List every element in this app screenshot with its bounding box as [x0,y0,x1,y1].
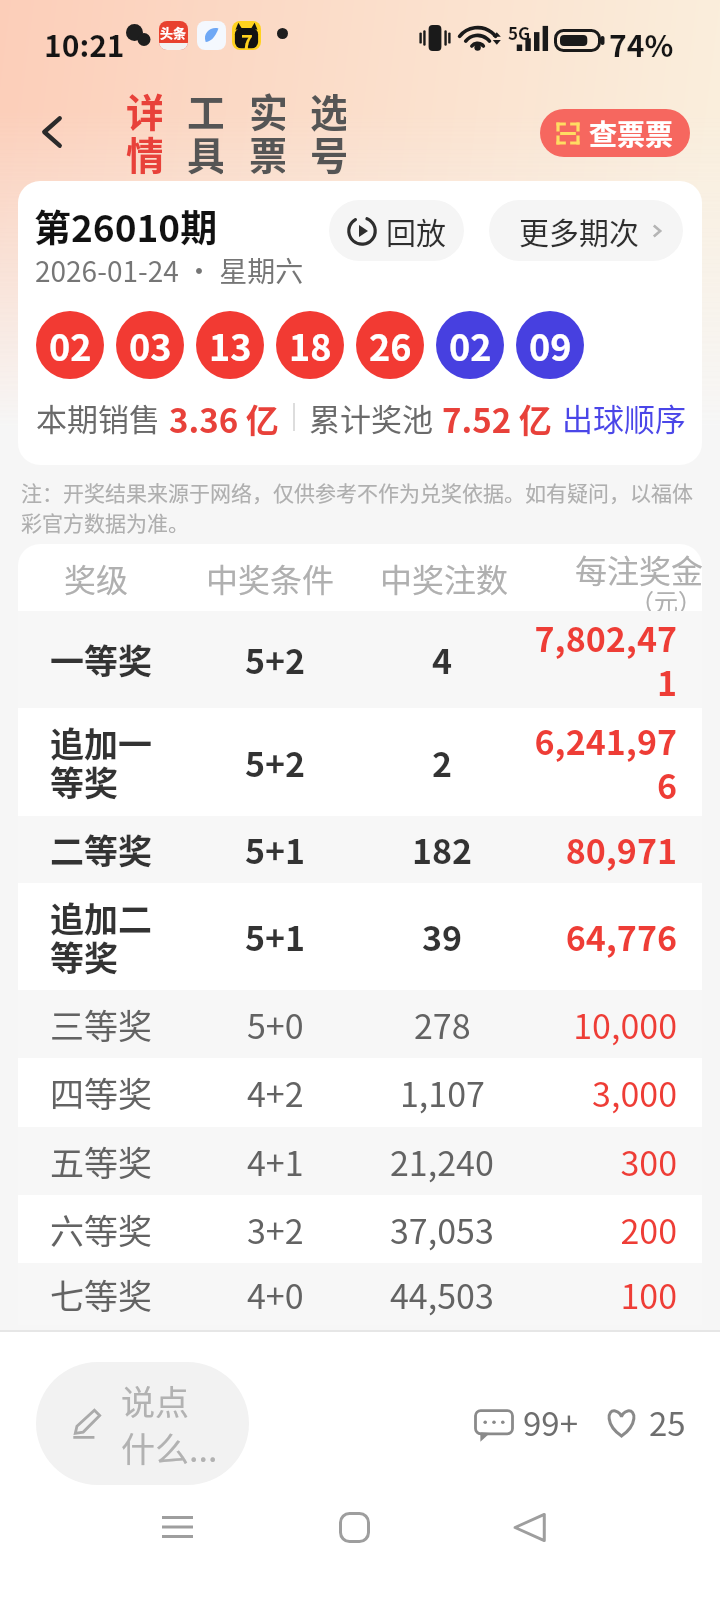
staticText: 追加二等奖 [50,893,156,981]
staticText: 本期销售 [36,395,160,439]
staticText: 详 情 [126,82,162,178]
staticText: （元） [630,583,702,618]
button[interactable]: 追加一等奖 [18,708,702,816]
button[interactable]: 三等奖 [18,990,702,1058]
staticText: 六等奖 [50,1205,152,1254]
button[interactable]: 更多期次 [489,200,683,261]
staticText: 二等奖 [50,825,152,874]
staticText: 4+2 [247,1068,304,1117]
staticText: 5G [508,20,531,45]
button[interactable]: Comments [474,1398,578,1446]
button[interactable]: 出球顺序 [562,395,686,439]
staticText: 注：开奖结果来源于网络，仅供参考不作为兑奖依据。如有疑问，以福体彩官方数据为准。 [21,477,703,537]
staticText: 出球顺序 [562,395,686,439]
staticText: 02 [449,319,492,371]
staticText: 更多期次 [519,209,639,252]
staticText: 三等奖 [50,1000,152,1049]
staticText: 追加一等奖 [50,718,156,806]
button[interactable]: 二等奖 [18,816,702,883]
staticText: 回放 [386,209,446,252]
staticText: 03 [129,319,172,371]
staticText: 80,971 [565,825,677,874]
staticText: 18 [289,319,332,371]
button[interactable]: 实 票 [249,82,285,178]
staticText: 74% [609,22,674,65]
staticText: 4 [432,635,453,684]
staticText: 26 [369,319,412,371]
button[interactable]: Home [320,1493,388,1561]
staticText: 64,776 [565,912,677,961]
button[interactable]: 查票票 [540,109,690,157]
button[interactable]: 追加二等奖 [18,883,702,990]
button[interactable]: 七等奖 [18,1263,702,1325]
staticText: 99+ [523,1398,578,1446]
staticText: 七等奖 [50,1270,152,1319]
staticText: 实 票 [249,82,285,178]
staticText: 头条 [160,23,187,42]
staticText: 五等奖 [50,1137,152,1186]
staticText: 第26010期 [34,199,218,253]
button[interactable]: Back [496,1493,564,1561]
staticText: 02 [49,319,92,371]
staticText: 100 [620,1270,677,1319]
staticText: 44,503 [390,1270,494,1319]
staticText: 3.36 亿 [169,395,279,439]
staticText: 累计奖池 [309,395,433,439]
staticText: 7.52 亿 [442,395,552,439]
staticText: 工 具 [187,82,223,178]
staticText: 查票票 [589,113,674,154]
button[interactable]: 选 号 [310,82,346,178]
staticText: 说点 什么... [121,1376,218,1472]
button[interactable]: 五等奖 [18,1127,702,1195]
staticText: 中奖注数 [380,555,509,601]
staticText: 2 [432,738,453,787]
staticText: 10,000 [573,1000,677,1049]
button[interactable]: Like [604,1398,686,1446]
staticText: 37,053 [390,1205,494,1254]
button[interactable]: Back [24,104,80,160]
staticText: 4+0 [247,1270,304,1319]
staticText: 21,240 [390,1137,494,1186]
staticText: 选 号 [310,82,346,178]
staticText: 2026-01-24 · 星期六 [35,250,304,291]
staticText: 7 [241,27,253,50]
button[interactable]: 一等奖 [18,611,702,708]
staticText: 中奖条件 [206,555,335,601]
button[interactable]: 回放 [329,200,464,261]
staticText: 200 [620,1205,677,1254]
staticText: 25 [649,1398,686,1446]
staticText: 5+2 [245,738,306,787]
staticText: 13 [209,319,252,371]
staticText: 5+1 [245,825,306,874]
staticText: 09 [529,319,572,371]
staticText: 四等奖 [50,1068,152,1117]
button[interactable]: 说点 什么... [36,1362,249,1485]
staticText: 39 [422,912,463,961]
staticText: 5+1 [245,912,306,961]
staticText: 278 [414,1000,471,1049]
button[interactable]: 详 情 [126,82,162,178]
staticText: 10:21 [44,22,125,65]
staticText: 300 [620,1137,677,1186]
staticText: 奖级 [64,555,129,601]
staticText: 每注奖金 [575,546,702,592]
staticText: 1,107 [400,1068,485,1117]
staticText: 3,000 [592,1068,677,1117]
staticText: 182 [412,825,473,874]
button[interactable]: 工 具 [187,82,223,178]
staticText: 3+2 [247,1205,304,1254]
button[interactable]: 四等奖 [18,1058,702,1127]
staticText: 一等奖 [50,635,152,684]
staticText: 7,802,471 [532,613,677,706]
staticText: 6,241,976 [532,716,677,809]
staticText: 4+1 [247,1137,304,1186]
staticText: 5+2 [245,635,306,684]
button[interactable]: 六等奖 [18,1195,702,1263]
staticText: 5+0 [247,1000,304,1049]
button[interactable]: Recents [143,1493,211,1561]
